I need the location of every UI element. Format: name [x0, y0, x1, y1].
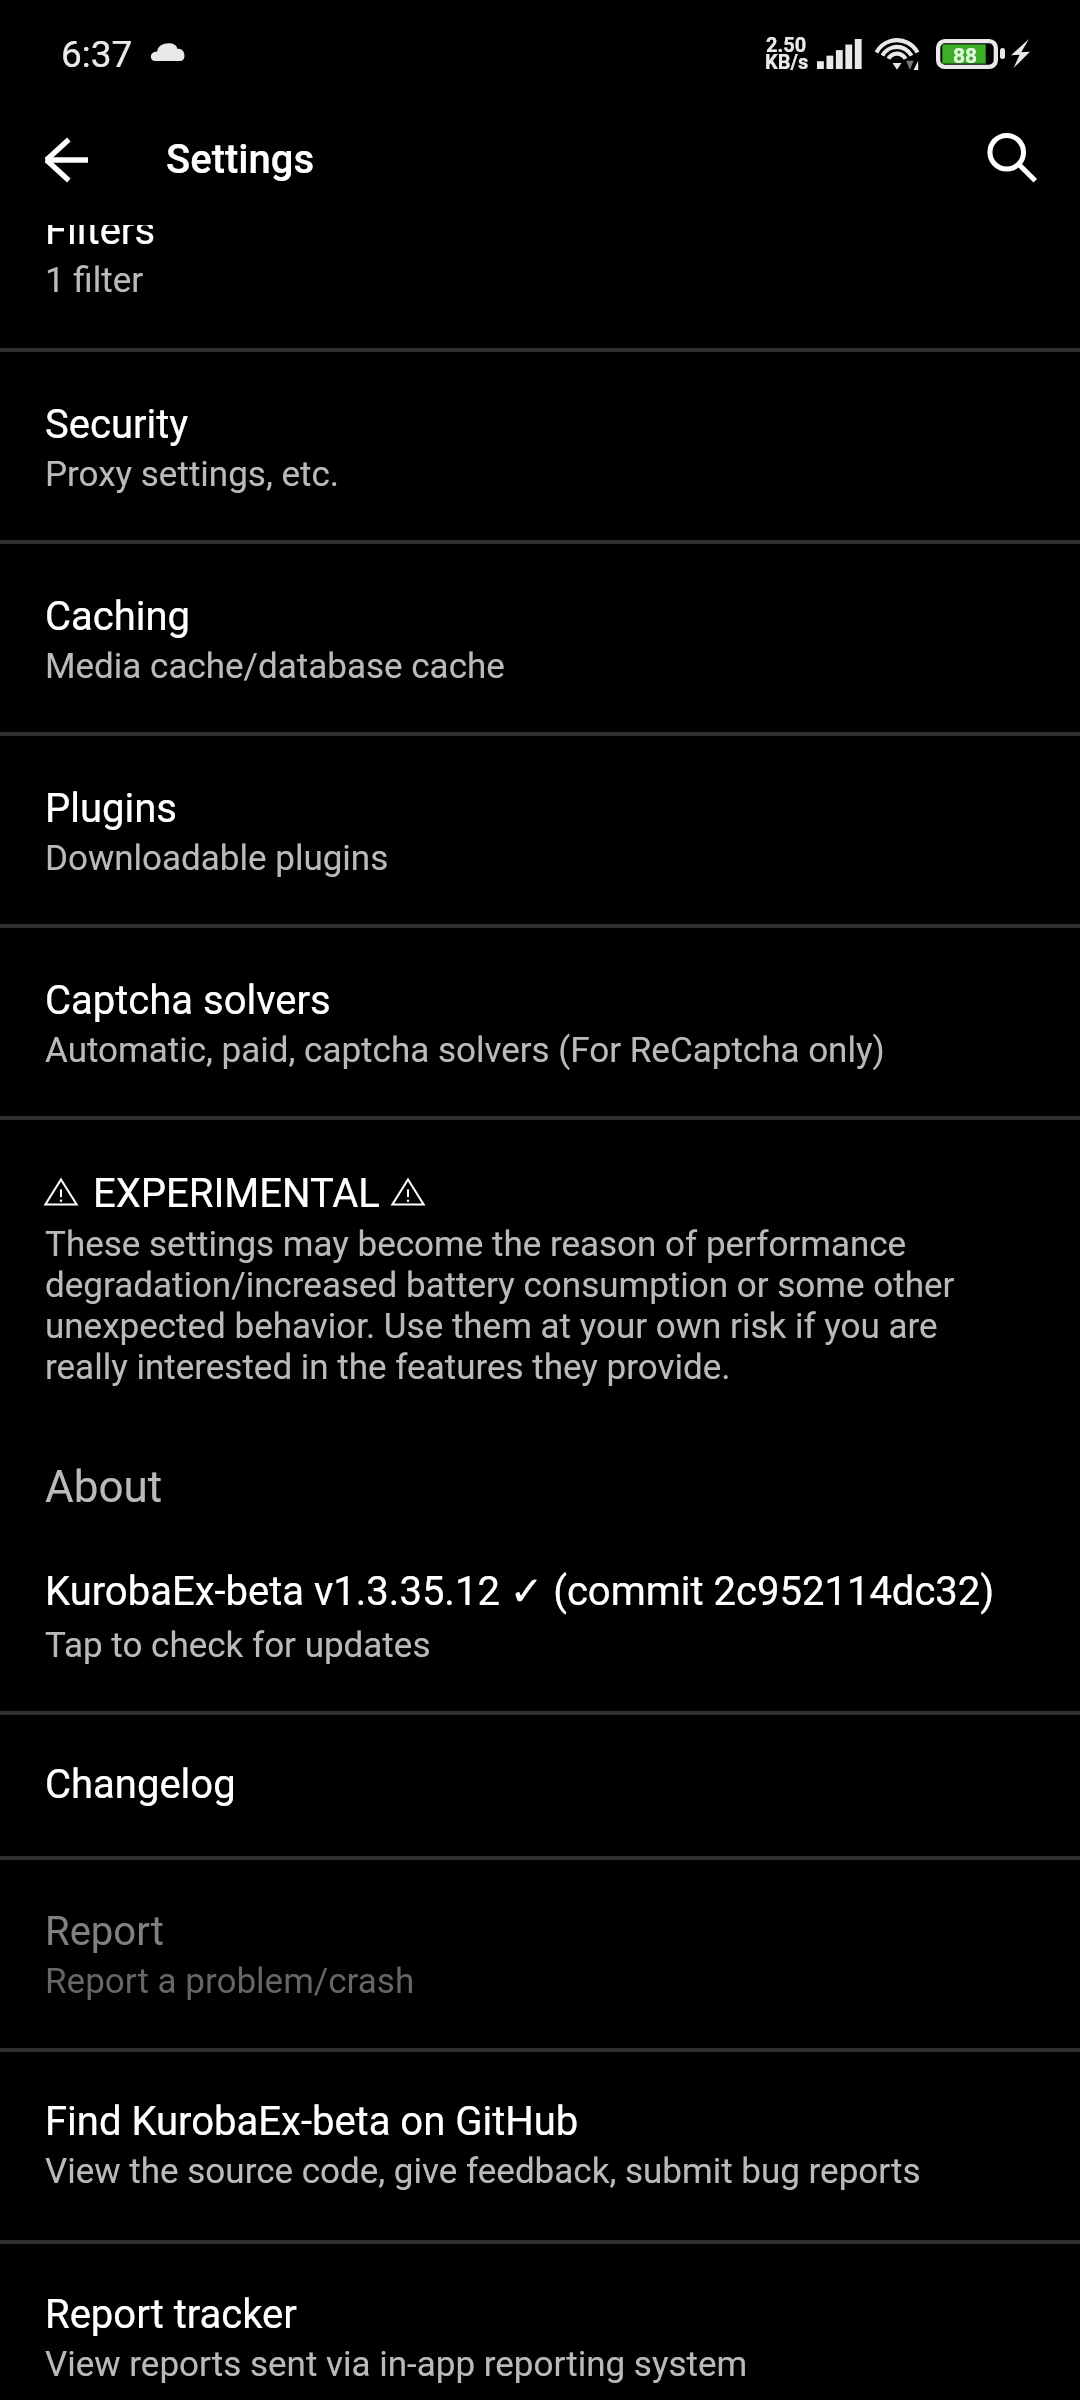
button[interactable] — [0, 1520, 1080, 1712]
staticText: EXPERIMENTAL — [93, 1170, 380, 1217]
staticText: Tap to check for updates — [45, 1625, 431, 1666]
staticText: Report a problem/crash — [45, 1961, 415, 2002]
staticText: Media cache/database cache — [45, 646, 505, 687]
staticText: Proxy settings, etc. — [45, 454, 340, 495]
staticText: View the source code, give feedback, sub… — [45, 2151, 921, 2192]
staticText: View reports sent via in-app reporting s… — [45, 2344, 748, 2385]
button[interactable] — [0, 544, 1080, 733]
staticText: Security — [45, 401, 189, 448]
button[interactable]: Back — [18, 112, 114, 208]
staticText: Captcha solvers — [45, 977, 331, 1024]
staticText: Caching — [45, 593, 191, 640]
staticText: About — [45, 1461, 163, 1513]
button[interactable] — [0, 1715, 1080, 1857]
staticText: KurobaEx-beta v1.3.35.12 ✓ (commit 2c952… — [45, 1568, 995, 1615]
button[interactable] — [0, 1860, 1080, 2049]
button[interactable] — [0, 736, 1080, 925]
staticText: Find KurobaEx-beta on GitHub — [45, 2098, 579, 2145]
button[interactable] — [0, 352, 1080, 541]
button[interactable] — [0, 928, 1080, 1117]
button[interactable] — [0, 225, 1080, 349]
staticText: 2.50 — [766, 33, 807, 56]
staticText: Filters — [45, 225, 156, 254]
staticText: 88 — [953, 44, 978, 69]
staticText: Plugins — [45, 785, 177, 832]
staticText: Report tracker — [45, 2291, 297, 2338]
staticText: KB/s — [765, 50, 809, 73]
button[interactable] — [0, 2052, 1080, 2241]
staticText: Downloadable plugins — [45, 838, 389, 879]
staticText: 6:37 — [61, 33, 133, 76]
staticText: Report — [45, 1908, 164, 1955]
staticText: Automatic, paid, captcha solvers (For Re… — [45, 1030, 885, 1071]
button[interactable] — [0, 2244, 1080, 2400]
staticText: Changelog — [45, 1761, 236, 1808]
button[interactable]: Search — [958, 112, 1054, 208]
staticText: Settings — [166, 136, 315, 183]
staticText: These settings may become the reason of … — [45, 1224, 995, 1388]
staticText: 1 filter — [45, 260, 144, 301]
